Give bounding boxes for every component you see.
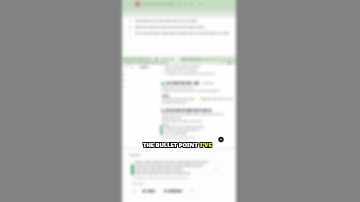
staticText: THE BULLET POINT (142, 140, 199, 148)
staticText: I'VE (199, 142, 211, 150)
staticText: I'VE (201, 141, 213, 149)
staticText: THE BULLET POINT (144, 140, 201, 148)
staticText: I'VE (201, 140, 213, 148)
staticText: I'VE (201, 142, 213, 150)
staticText: THE BULLET POINT (143, 140, 200, 148)
staticText: I'VE (200, 140, 212, 148)
staticText: THE BULLET POINT (144, 142, 201, 150)
button[interactable]: Video frame (0, 0, 360, 202)
staticText: I'VE (200, 142, 212, 150)
staticText: THE BULLET POINT (142, 141, 199, 149)
staticText: I'VE (199, 140, 211, 148)
staticText: I'VE (199, 141, 211, 149)
staticText: THE BULLET POINT (144, 141, 201, 149)
staticText: THE BULLET POINT (143, 141, 200, 149)
staticText: THE BULLET POINT (143, 142, 200, 150)
staticText: I'VE (200, 141, 212, 149)
staticText: THE BULLET POINT (142, 142, 199, 150)
